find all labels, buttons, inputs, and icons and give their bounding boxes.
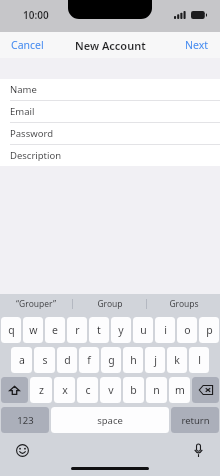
button[interactable]: o xyxy=(177,317,197,343)
staticText: s xyxy=(42,353,48,367)
button[interactable]: g xyxy=(101,347,121,373)
button[interactable]: e xyxy=(45,317,65,343)
staticText: return xyxy=(181,414,210,427)
staticText: a xyxy=(19,353,25,367)
staticText: o xyxy=(184,323,191,337)
staticText: c xyxy=(85,383,91,397)
staticText: Groups xyxy=(169,298,199,310)
staticText: i xyxy=(164,323,167,337)
staticText: Email xyxy=(10,105,35,118)
button[interactable]: f xyxy=(79,347,99,373)
button[interactable]: Description xyxy=(0,145,220,166)
staticText: p xyxy=(206,323,213,337)
staticText: x xyxy=(62,383,68,397)
button[interactable]: y xyxy=(111,317,131,343)
button[interactable]: p xyxy=(199,317,219,343)
staticText: 10:00 xyxy=(23,8,49,22)
button[interactable]: c xyxy=(77,377,98,403)
button[interactable]: v xyxy=(100,377,121,403)
staticText: h xyxy=(130,353,137,367)
button[interactable]: “Grouper” xyxy=(0,294,72,313)
button[interactable]: Shift xyxy=(1,377,28,403)
staticText: n xyxy=(153,383,160,397)
staticText: y xyxy=(118,323,124,337)
button[interactable]: Password xyxy=(0,123,220,144)
button[interactable]: b xyxy=(123,377,144,403)
button[interactable]: Cancel xyxy=(0,32,55,58)
staticText: t xyxy=(97,323,101,337)
staticText: Name xyxy=(10,83,37,96)
staticText: k xyxy=(174,353,180,367)
staticText: q xyxy=(8,323,15,337)
staticText: e xyxy=(52,323,58,337)
button[interactable]: d xyxy=(57,347,77,373)
staticText: u xyxy=(140,323,147,337)
button[interactable]: i xyxy=(155,317,175,343)
button[interactable]: t xyxy=(89,317,109,343)
button[interactable]: Dictation xyxy=(188,440,208,460)
staticText: Cancel xyxy=(11,38,44,52)
staticText: Next xyxy=(185,38,209,52)
button[interactable]: n xyxy=(146,377,167,403)
staticText: w xyxy=(29,323,38,337)
button[interactable]: Emoji xyxy=(12,440,32,460)
button[interactable]: Next xyxy=(174,32,220,58)
button[interactable]: Name xyxy=(0,79,220,100)
button[interactable]: m xyxy=(169,377,190,403)
staticText: f xyxy=(87,353,91,367)
staticText: 123 xyxy=(17,414,34,427)
button[interactable]: z xyxy=(30,377,52,403)
button[interactable]: h xyxy=(123,347,143,373)
staticText: Group xyxy=(97,298,123,310)
staticText: g xyxy=(108,353,115,367)
staticText: j xyxy=(154,353,157,367)
button[interactable]: space xyxy=(51,407,169,433)
button[interactable]: 123 xyxy=(1,407,49,433)
staticText: New Account xyxy=(75,38,146,53)
staticText: d xyxy=(64,353,71,367)
button[interactable]: a xyxy=(11,347,32,373)
button[interactable]: Groups xyxy=(147,294,220,313)
staticText: b xyxy=(130,383,137,397)
button[interactable]: j xyxy=(145,347,165,373)
button[interactable]: l xyxy=(189,347,209,373)
button[interactable]: Backspace xyxy=(192,377,219,403)
staticText: Password xyxy=(10,127,53,140)
button[interactable]: r xyxy=(67,317,87,343)
staticText: m xyxy=(175,383,185,397)
button[interactable]: q xyxy=(1,317,21,343)
button[interactable]: return xyxy=(171,407,219,433)
staticText: r xyxy=(75,323,80,337)
button[interactable]: x xyxy=(54,377,75,403)
button[interactable]: w xyxy=(23,317,43,343)
button[interactable]: s xyxy=(34,347,55,373)
staticText: Description xyxy=(10,149,62,162)
button[interactable]: Email xyxy=(0,101,220,122)
staticText: “Grouper” xyxy=(16,298,56,310)
button[interactable]: u xyxy=(133,317,153,343)
staticText: z xyxy=(39,383,44,397)
button[interactable]: Group xyxy=(73,294,146,313)
staticText: l xyxy=(198,353,201,367)
button[interactable]: k xyxy=(167,347,187,373)
staticText: v xyxy=(108,383,114,397)
staticText: space xyxy=(97,414,123,427)
